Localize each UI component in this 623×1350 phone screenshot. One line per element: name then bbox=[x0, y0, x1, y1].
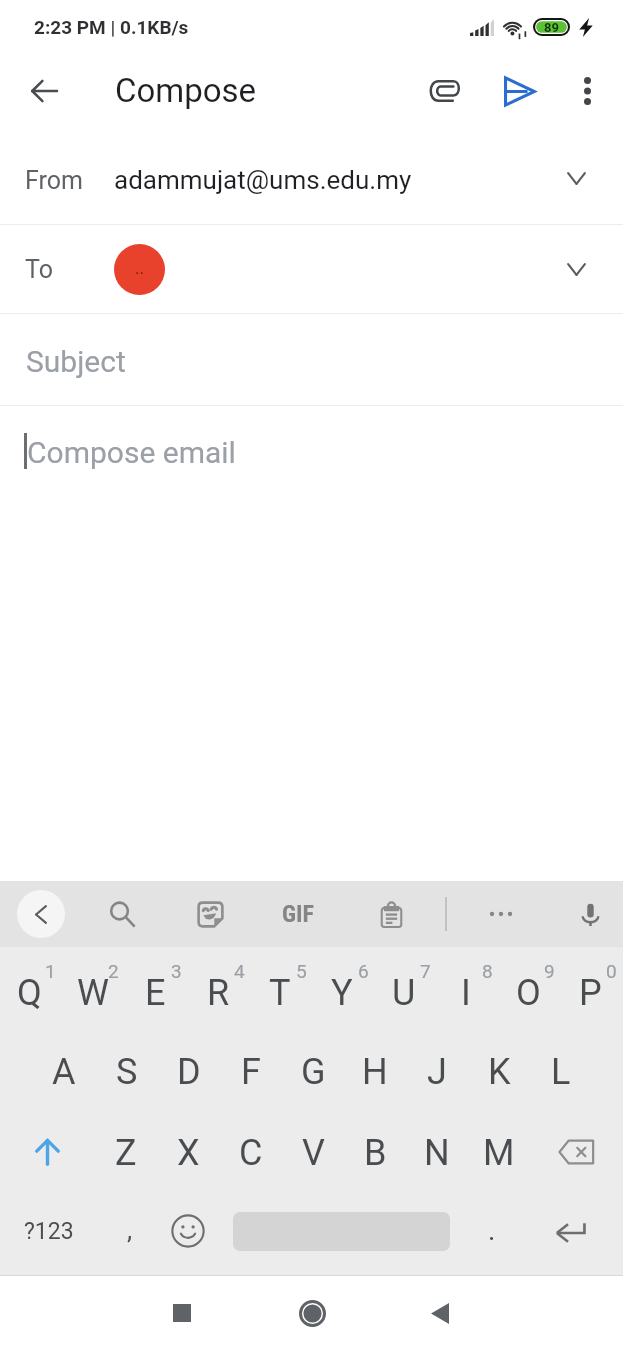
staticText: J bbox=[427, 1051, 447, 1093]
button[interactable]: GIF bbox=[272, 888, 324, 940]
staticText: 89 bbox=[544, 20, 559, 35]
button[interactable]: G bbox=[282, 1029, 344, 1111]
button[interactable]: N bbox=[406, 1111, 468, 1193]
button[interactable]: O bbox=[499, 947, 561, 1029]
staticText: adammujat@ums.edu.my bbox=[114, 165, 412, 195]
button[interactable]: From bbox=[0, 128, 623, 224]
button[interactable]: Clipboard bbox=[365, 888, 417, 940]
staticText: GIF bbox=[282, 900, 314, 928]
button[interactable]: Back bbox=[410, 1283, 470, 1343]
staticText: P bbox=[579, 972, 602, 1014]
staticText: To bbox=[25, 255, 53, 284]
button[interactable]: L bbox=[530, 1029, 592, 1111]
button[interactable]: ?123 bbox=[0, 1193, 97, 1275]
staticText: K bbox=[488, 1051, 511, 1093]
staticText: M bbox=[483, 1132, 515, 1174]
button[interactable]: Back bbox=[20, 67, 68, 115]
button[interactable]: Enter bbox=[521, 1193, 619, 1275]
button[interactable]: . bbox=[459, 1193, 525, 1275]
button[interactable]: A bbox=[32, 1029, 95, 1111]
staticText: 6 bbox=[358, 960, 369, 982]
staticText: G bbox=[301, 1051, 326, 1093]
staticText: W bbox=[77, 972, 109, 1014]
staticText: R bbox=[207, 972, 230, 1014]
button[interactable]: F bbox=[220, 1029, 282, 1111]
staticText: 0 bbox=[606, 960, 617, 982]
staticText: A bbox=[52, 1051, 76, 1093]
button[interactable]: H bbox=[344, 1029, 406, 1111]
staticText: F bbox=[241, 1051, 261, 1093]
button[interactable]: Q bbox=[0, 947, 63, 1029]
button[interactable]: E bbox=[126, 947, 189, 1029]
staticText: 4 bbox=[234, 960, 245, 982]
staticText: Y bbox=[331, 972, 353, 1014]
staticText: From bbox=[25, 166, 83, 195]
button[interactable]: C bbox=[220, 1111, 282, 1193]
button[interactable]: D bbox=[158, 1029, 220, 1111]
staticText: 2 bbox=[108, 960, 119, 982]
staticText: H bbox=[362, 1051, 388, 1093]
button[interactable]: Voice input bbox=[564, 888, 616, 940]
staticText: 2:23 PM | 0.1KB/s bbox=[34, 16, 189, 38]
button[interactable]: Attach file bbox=[421, 67, 469, 115]
staticText: V bbox=[302, 1132, 325, 1174]
staticText: 5 bbox=[296, 960, 307, 982]
button[interactable]: J bbox=[406, 1029, 468, 1111]
button[interactable]: Subject bbox=[0, 314, 623, 405]
staticText: 1 bbox=[45, 960, 56, 982]
button[interactable]: B bbox=[344, 1111, 406, 1193]
staticText: ?123 bbox=[24, 1218, 74, 1245]
button[interactable]: W bbox=[63, 947, 126, 1029]
button[interactable]: Z bbox=[94, 1111, 157, 1193]
staticText: X bbox=[177, 1132, 200, 1174]
button[interactable]: U bbox=[375, 947, 437, 1029]
button[interactable]: Home bbox=[282, 1283, 342, 1343]
staticText: E bbox=[145, 972, 166, 1014]
button[interactable]: Close toolbar bbox=[17, 890, 65, 938]
button[interactable]: M bbox=[468, 1111, 530, 1193]
button[interactable]: Space bbox=[229, 1193, 459, 1275]
button[interactable]: More options bbox=[563, 67, 611, 115]
button[interactable]: More bbox=[475, 888, 527, 940]
staticText: Compose email bbox=[27, 435, 236, 470]
button[interactable]: P bbox=[561, 947, 623, 1029]
staticText: L bbox=[551, 1051, 571, 1093]
staticText: Z bbox=[115, 1132, 137, 1174]
staticText: , bbox=[127, 1215, 133, 1245]
staticText: Subject bbox=[26, 344, 126, 379]
button[interactable]: Send bbox=[495, 67, 543, 115]
staticText: Q bbox=[17, 972, 42, 1014]
button[interactable]: T bbox=[251, 947, 313, 1029]
button[interactable]: Emoji bbox=[155, 1193, 221, 1275]
button[interactable]: , bbox=[97, 1193, 163, 1275]
button[interactable]: Stickers bbox=[184, 888, 236, 940]
button[interactable]: Search bbox=[96, 888, 148, 940]
button[interactable]: Recents bbox=[152, 1283, 212, 1343]
staticText: S bbox=[116, 1051, 138, 1093]
staticText: . bbox=[488, 1214, 496, 1247]
button[interactable]: Compose email bbox=[0, 406, 623, 494]
staticText: N bbox=[424, 1132, 450, 1174]
staticText: O bbox=[516, 972, 541, 1014]
staticText: .. bbox=[135, 258, 144, 278]
staticText: D bbox=[177, 1051, 201, 1093]
button[interactable]: R bbox=[189, 947, 251, 1029]
button[interactable]: X bbox=[157, 1111, 220, 1193]
staticText: I bbox=[461, 972, 471, 1014]
button[interactable]: S bbox=[95, 1029, 158, 1111]
staticText: 9 bbox=[544, 960, 555, 982]
button[interactable]: Shift bbox=[0, 1111, 94, 1193]
staticText: C bbox=[239, 1132, 263, 1174]
staticText: U bbox=[392, 972, 416, 1014]
staticText: 7 bbox=[420, 960, 431, 982]
button[interactable]: V bbox=[282, 1111, 344, 1193]
button[interactable]: Backspace bbox=[530, 1111, 623, 1193]
staticText: Compose bbox=[115, 71, 257, 110]
button[interactable]: Y bbox=[313, 947, 375, 1029]
button[interactable]: To bbox=[0, 225, 623, 313]
staticText: B bbox=[364, 1132, 387, 1174]
staticText: T bbox=[269, 972, 291, 1014]
staticText: 8 bbox=[482, 960, 493, 982]
button[interactable]: K bbox=[468, 1029, 530, 1111]
button[interactable]: I bbox=[437, 947, 499, 1029]
